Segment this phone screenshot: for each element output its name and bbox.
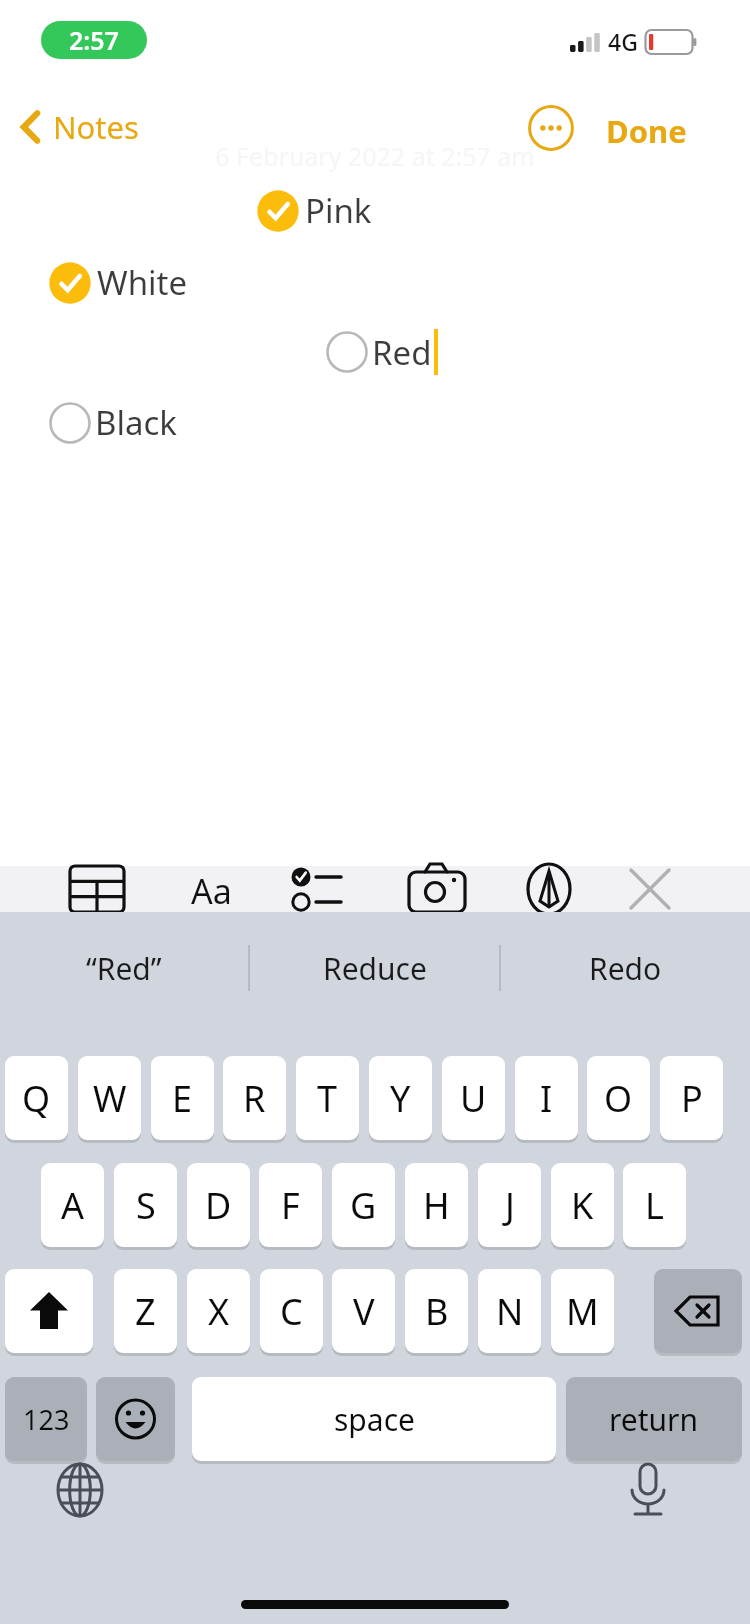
staticText: Red [372, 330, 432, 375]
staticText: F [281, 1181, 300, 1230]
staticText: B [425, 1287, 449, 1336]
button[interactable]: More options [527, 104, 575, 152]
button[interactable]: B [405, 1269, 468, 1353]
staticText: W [93, 1074, 127, 1123]
button[interactable]: Dictate [616, 1458, 680, 1522]
staticText: Pink [305, 188, 372, 233]
staticText: D [205, 1181, 232, 1230]
staticText: Reduce [323, 948, 427, 989]
button[interactable]: Redo [501, 930, 750, 1006]
staticText: “Red” [86, 948, 162, 989]
button[interactable]: Z [114, 1269, 177, 1353]
staticText: E [172, 1074, 193, 1123]
staticText: P [681, 1074, 703, 1123]
staticText: K [571, 1181, 594, 1230]
staticText: A [61, 1181, 85, 1230]
button[interactable]: U [442, 1056, 505, 1140]
staticText: Notes [53, 106, 139, 148]
button[interactable]: Close keyboard [617, 856, 683, 922]
staticText: R [243, 1074, 266, 1123]
button[interactable]: Black [49, 393, 177, 452]
button[interactable]: Pink [257, 181, 372, 240]
button[interactable]: Shift [5, 1269, 93, 1353]
button[interactable]: Emoji [96, 1377, 175, 1461]
button[interactable]: Backspace [654, 1269, 742, 1353]
staticText: X [208, 1287, 230, 1336]
button[interactable]: E [151, 1056, 214, 1140]
staticText: 6 February 2022 at 2:57 am [215, 139, 535, 173]
staticText: J [505, 1181, 515, 1230]
staticText: 123 [23, 1401, 70, 1438]
staticText: Q [22, 1074, 51, 1123]
button[interactable]: Text format [181, 868, 241, 910]
button[interactable]: Markup [516, 856, 582, 922]
staticText: C [280, 1287, 303, 1336]
button[interactable]: X [187, 1269, 250, 1353]
button[interactable]: I [515, 1056, 578, 1140]
button[interactable]: Notes [14, 100, 145, 154]
button[interactable]: Reduce [250, 930, 499, 1006]
button[interactable]: Red [326, 322, 438, 382]
staticText: Aa [191, 868, 232, 910]
button[interactable]: O [587, 1056, 650, 1140]
button[interactable]: Table [64, 856, 130, 922]
button[interactable]: H [405, 1163, 468, 1247]
button[interactable]: V [332, 1269, 395, 1353]
staticText: Done [606, 110, 687, 152]
button[interactable]: “Red” [0, 930, 248, 1006]
staticText: S [136, 1181, 156, 1230]
staticText: H [423, 1181, 450, 1230]
staticText: White [97, 260, 188, 305]
staticText: Redo [589, 948, 662, 989]
button[interactable]: return [566, 1377, 742, 1461]
staticText: Black [95, 400, 177, 445]
button[interactable]: Checklist [290, 856, 356, 922]
button[interactable]: D [187, 1163, 250, 1247]
staticText: space [334, 1399, 415, 1440]
staticText: 4G [608, 26, 638, 57]
staticText: L [645, 1181, 664, 1230]
staticText: Z [135, 1287, 156, 1336]
button[interactable]: P [660, 1056, 723, 1140]
button[interactable]: 123 [5, 1377, 87, 1461]
button[interactable]: T [296, 1056, 359, 1140]
button[interactable]: Y [369, 1056, 432, 1140]
staticText: U [460, 1074, 487, 1123]
button[interactable]: Done [602, 104, 691, 158]
button[interactable]: White [49, 253, 188, 312]
button[interactable]: W [78, 1056, 141, 1140]
button[interactable]: L [623, 1163, 686, 1247]
button[interactable]: C [260, 1269, 323, 1353]
button[interactable]: Camera [404, 856, 470, 922]
staticText: I [540, 1074, 553, 1123]
staticText: M [566, 1287, 599, 1336]
button[interactable]: J [478, 1163, 541, 1247]
staticText: T [317, 1074, 338, 1123]
staticText: Y [390, 1074, 411, 1123]
staticText: V [353, 1287, 375, 1336]
staticText: 2:57 [69, 23, 119, 57]
button[interactable]: N [478, 1269, 541, 1353]
button[interactable]: G [332, 1163, 395, 1247]
button[interactable]: K [551, 1163, 614, 1247]
staticText: G [350, 1181, 377, 1230]
button[interactable]: R [223, 1056, 286, 1140]
button[interactable]: M [551, 1269, 614, 1353]
staticText: O [604, 1074, 633, 1123]
staticText: return [609, 1399, 699, 1440]
button[interactable]: space [192, 1377, 556, 1461]
button[interactable]: Recording indicator 2:57 [41, 21, 147, 59]
button[interactable]: Q [5, 1056, 68, 1140]
button[interactable]: S [114, 1163, 177, 1247]
staticText: N [496, 1287, 524, 1336]
button[interactable]: F [259, 1163, 322, 1247]
button[interactable]: A [41, 1163, 104, 1247]
button[interactable]: Switch keyboard language [48, 1458, 112, 1522]
